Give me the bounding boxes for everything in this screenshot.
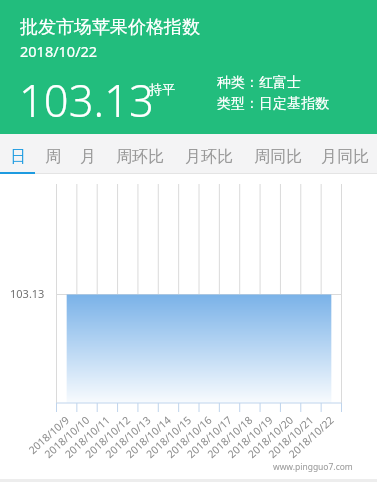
button[interactable]: 月同比 [312, 134, 377, 174]
button[interactable]: 月环比 [174, 134, 243, 174]
staticText: 类型：日定基指数 [217, 95, 329, 113]
staticText: 月 [80, 147, 96, 167]
staticText: 批发市场苹果价格指数 [20, 16, 200, 39]
staticText: 持平 [149, 81, 175, 97]
staticText: 周 [45, 147, 61, 167]
staticText: 周环比 [116, 147, 164, 167]
button[interactable]: 周同比 [243, 134, 312, 174]
staticText: 103.13 [10, 286, 45, 301]
button[interactable]: 周环比 [105, 134, 174, 174]
staticText: www.pingguo7.com [273, 461, 353, 473]
staticText: 种类：红富士 [217, 74, 301, 92]
button[interactable]: 月 [70, 134, 105, 174]
staticText: 月同比 [321, 147, 369, 167]
staticText: 日 [10, 147, 26, 167]
staticText: 103.13 [19, 70, 154, 129]
button[interactable]: 周 [35, 134, 70, 174]
staticText: 周同比 [254, 147, 302, 167]
staticText: 月环比 [185, 147, 233, 167]
staticText: 2018/10/22 [20, 41, 98, 61]
button[interactable]: 日 [0, 134, 35, 174]
